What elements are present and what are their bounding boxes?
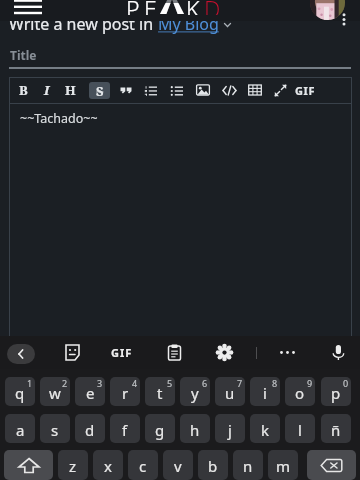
staticText: s: [51, 420, 59, 440]
button[interactable]: Table: [243, 77, 267, 103]
button[interactable]: S: [87, 77, 111, 103]
button[interactable]: Code: [217, 77, 241, 103]
button[interactable]: H: [58, 77, 82, 103]
button[interactable]: I: [35, 77, 59, 103]
staticText: l: [298, 420, 302, 440]
staticText: B: [19, 81, 28, 99]
staticText: S: [96, 82, 104, 99]
button[interactable]: Profile: [310, 0, 345, 20]
staticText: GIF: [111, 345, 133, 360]
button[interactable]: Clipboard: [160, 336, 188, 369]
staticText: ñ: [331, 420, 341, 440]
button[interactable]: h: [180, 414, 210, 443]
button[interactable]: v: [163, 450, 193, 480]
button[interactable]: More options: [333, 8, 355, 30]
staticText: GIF: [295, 83, 316, 98]
staticText: v: [174, 456, 182, 476]
button[interactable]: Quote: [114, 77, 138, 103]
button[interactable]: e: [75, 377, 105, 406]
button[interactable]: f: [110, 414, 140, 443]
staticText: k: [261, 420, 270, 440]
button[interactable]: Bullet list: [164, 77, 188, 103]
button[interactable]: c: [128, 450, 158, 480]
button[interactable]: m: [268, 450, 298, 480]
staticText: 3: [97, 377, 103, 389]
button[interactable]: x: [93, 450, 123, 480]
button[interactable]: Collapse: [268, 77, 292, 103]
button[interactable]: i: [250, 377, 280, 406]
staticText: y: [191, 383, 199, 403]
staticText: a: [16, 420, 25, 440]
staticText: e: [86, 383, 95, 403]
staticText: w: [49, 383, 61, 403]
staticText: E: [144, 0, 157, 15]
staticText: b: [208, 456, 218, 476]
staticText: 9: [307, 377, 313, 389]
staticText: 7: [237, 377, 243, 389]
staticText: Write a new post in: [9, 13, 158, 35]
button[interactable]: d: [75, 414, 105, 443]
button[interactable]: GIF: [106, 336, 138, 369]
button[interactable]: t: [145, 377, 175, 406]
staticText: i: [263, 383, 267, 403]
button[interactable]: My Blog: [158, 13, 219, 35]
button[interactable]: w: [40, 377, 70, 406]
button[interactable]: u: [215, 377, 245, 406]
button[interactable]: p: [321, 377, 351, 406]
button[interactable]: Image: [191, 77, 215, 103]
staticText: ~~Tachado~~: [20, 110, 98, 127]
button[interactable]: Sticker: [58, 336, 86, 369]
staticText: x: [104, 456, 112, 476]
button[interactable]: q: [5, 377, 35, 406]
staticText: r: [122, 383, 129, 403]
staticText: h: [190, 420, 200, 440]
staticText: H: [65, 81, 76, 99]
staticText: g: [155, 420, 165, 440]
staticText: j: [228, 420, 232, 440]
staticText: q: [15, 383, 25, 403]
staticText: z: [69, 456, 77, 476]
staticText: o: [295, 383, 305, 403]
button[interactable]: s: [40, 414, 70, 443]
staticText: Title: [10, 47, 37, 63]
staticText: c: [139, 456, 147, 476]
button[interactable]: g: [145, 414, 175, 443]
staticText: f: [122, 420, 128, 440]
staticText: u: [225, 383, 235, 403]
button[interactable]: Shift: [4, 450, 53, 480]
button[interactable]: Voice input: [324, 336, 352, 369]
button[interactable]: Settings: [210, 336, 238, 369]
staticText: 2: [62, 377, 68, 389]
staticText: P: [126, 0, 140, 15]
button[interactable]: n: [233, 450, 263, 480]
button[interactable]: o: [285, 377, 315, 406]
button[interactable]: b: [198, 450, 228, 480]
staticText: 6: [202, 377, 208, 389]
button[interactable]: Menu: [14, 0, 42, 16]
staticText: 4: [132, 377, 138, 389]
staticText: K: [186, 0, 200, 15]
button[interactable]: l: [285, 414, 315, 443]
staticText: m: [276, 456, 291, 476]
staticText: 5: [167, 377, 173, 389]
button[interactable]: k: [250, 414, 280, 443]
button[interactable]: ñ: [321, 414, 351, 443]
button[interactable]: B: [11, 77, 35, 103]
button[interactable]: GIF: [293, 77, 317, 103]
button[interactable]: j: [215, 414, 245, 443]
button[interactable]: Backspace: [307, 450, 356, 480]
staticText: 8: [272, 377, 278, 389]
button[interactable]: a: [5, 414, 35, 443]
staticText: d: [85, 420, 95, 440]
staticText: 1: [27, 377, 33, 389]
staticText: 0: [343, 377, 349, 389]
button[interactable]: Numbered list: [138, 77, 162, 103]
button[interactable]: y: [180, 377, 210, 406]
staticText: n: [243, 456, 253, 476]
button[interactable]: Back: [7, 344, 35, 364]
button[interactable]: z: [58, 450, 88, 480]
button[interactable]: r: [110, 377, 140, 406]
staticText: D: [204, 0, 221, 15]
button[interactable]: More options: [273, 336, 301, 369]
staticText: I: [44, 81, 50, 99]
